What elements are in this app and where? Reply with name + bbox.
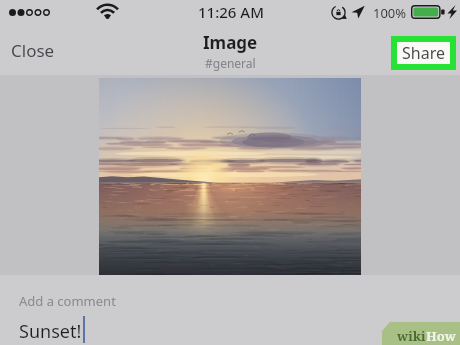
staticText: How — [426, 327, 456, 345]
button[interactable]: Share — [391, 36, 456, 70]
staticText: 100% — [373, 4, 407, 22]
staticText: 11:26 AM — [198, 2, 264, 22]
button[interactable]: Close — [0, 33, 66, 72]
staticText: Sunset! — [19, 319, 82, 344]
staticText: #general — [205, 55, 256, 71]
staticText: Add a comment — [19, 292, 116, 310]
staticText: Share — [402, 42, 445, 64]
staticText: Close — [11, 39, 55, 62]
staticText: wiki — [397, 327, 426, 345]
staticText: Image — [203, 31, 258, 54]
